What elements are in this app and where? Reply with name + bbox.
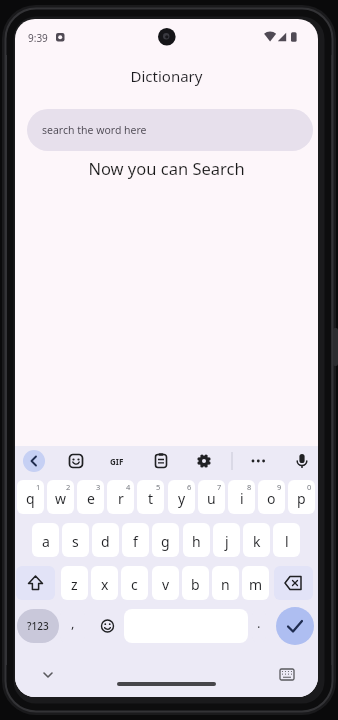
- button[interactable]: [16, 566, 55, 600]
- button[interactable]: a: [32, 523, 59, 557]
- staticText: 6: [187, 482, 192, 492]
- button[interactable]: v: [152, 566, 179, 600]
- staticText: c: [131, 575, 138, 594]
- staticText: 1: [36, 482, 41, 492]
- button[interactable]: e: [77, 480, 104, 514]
- button[interactable]: [95, 609, 120, 643]
- staticText: h: [192, 532, 201, 551]
- staticText: ?123: [27, 619, 49, 633]
- staticText: l: [285, 532, 289, 551]
- staticText: b: [191, 575, 200, 594]
- staticText: g: [161, 532, 170, 551]
- button[interactable]: b: [182, 566, 209, 600]
- staticText: f: [133, 532, 138, 551]
- button[interactable]: o: [258, 480, 285, 514]
- button[interactable]: ?123: [17, 609, 59, 643]
- staticText: e: [87, 489, 95, 508]
- button[interactable]: z: [61, 566, 88, 600]
- button[interactable]: m: [242, 566, 269, 600]
- staticText: p: [297, 489, 306, 508]
- staticText: i: [240, 489, 244, 508]
- staticText: y: [178, 489, 186, 508]
- button[interactable]: [23, 450, 45, 472]
- staticText: r: [118, 489, 124, 508]
- staticText: j: [225, 532, 229, 551]
- staticText: a: [42, 532, 50, 551]
- button[interactable]: n: [212, 566, 239, 600]
- staticText: 9: [277, 482, 282, 492]
- staticText: x: [101, 575, 109, 594]
- staticText: ,: [71, 614, 75, 632]
- button[interactable]: p: [288, 480, 315, 514]
- button[interactable]: i: [228, 480, 255, 514]
- staticText: search the word here: [42, 123, 147, 137]
- staticText: v: [162, 575, 170, 594]
- staticText: o: [267, 489, 276, 508]
- button[interactable]: w: [47, 480, 74, 514]
- button[interactable]: ,: [60, 609, 85, 643]
- staticText: t: [148, 489, 154, 508]
- button[interactable]: d: [92, 523, 119, 557]
- staticText: s: [72, 532, 79, 551]
- staticText: 3: [96, 482, 101, 492]
- staticText: GIF: [110, 456, 124, 467]
- button[interactable]: y: [168, 480, 195, 514]
- staticText: d: [101, 532, 110, 551]
- staticText: n: [221, 575, 230, 594]
- button[interactable]: x: [91, 566, 118, 600]
- button[interactable]: search the word here: [27, 109, 313, 151]
- staticText: 2: [66, 482, 71, 492]
- staticText: 5: [156, 482, 161, 492]
- staticText: 9:39: [28, 31, 48, 45]
- staticText: 8: [247, 482, 252, 492]
- staticText: 7: [217, 482, 222, 492]
- button[interactable]: j: [213, 523, 240, 557]
- staticText: 0: [307, 482, 312, 492]
- button[interactable]: k: [243, 523, 270, 557]
- button[interactable]: f: [122, 523, 149, 557]
- button[interactable]: c: [121, 566, 148, 600]
- button[interactable]: [274, 566, 313, 600]
- button[interactable]: g: [152, 523, 179, 557]
- button[interactable]: s: [62, 523, 89, 557]
- staticText: z: [71, 575, 78, 594]
- button[interactable]: h: [183, 523, 210, 557]
- button[interactable]: u: [198, 480, 225, 514]
- button[interactable]: .: [252, 609, 266, 643]
- staticText: .: [257, 614, 261, 632]
- staticText: Now you can Search: [15, 157, 318, 179]
- staticText: 4: [126, 482, 131, 492]
- button[interactable]: q: [17, 480, 44, 514]
- button[interactable]: r: [107, 480, 134, 514]
- staticText: k: [253, 532, 261, 551]
- button[interactable]: [276, 607, 314, 645]
- button[interactable]: l: [273, 523, 300, 557]
- staticText: q: [26, 489, 35, 508]
- button[interactable]: t: [137, 480, 164, 514]
- staticText: w: [55, 489, 67, 508]
- staticText: Dictionary: [15, 66, 318, 86]
- staticText: m: [249, 575, 263, 594]
- staticText: u: [207, 489, 216, 508]
